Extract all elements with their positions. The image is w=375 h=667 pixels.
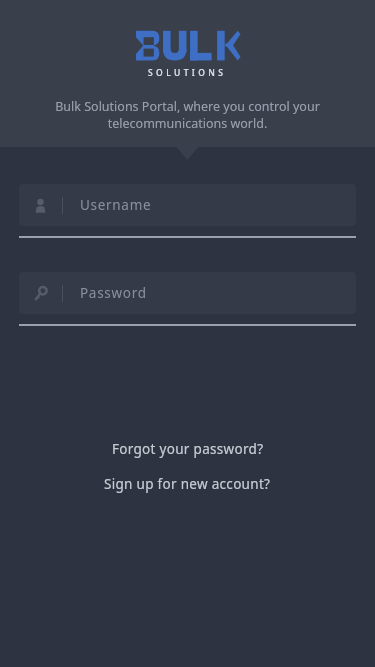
staticText: Bulk Solutions Portal, where you control… — [28, 98, 347, 132]
staticText: Password — [80, 284, 147, 302]
staticText: SOLUTIONS — [148, 67, 227, 79]
staticText: Forgot your password? — [112, 440, 264, 458]
staticText: Username — [80, 196, 152, 214]
button[interactable]: Forgot your password? — [0, 436, 375, 461]
button[interactable]: Sign up for new account? — [0, 471, 375, 496]
staticText: Sign up for new account? — [104, 475, 271, 493]
button[interactable]: Username — [19, 184, 356, 226]
button[interactable]: Password — [19, 272, 356, 314]
